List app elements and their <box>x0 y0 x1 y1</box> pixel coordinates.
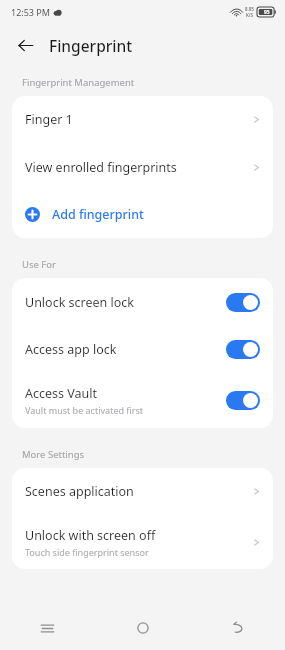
staticText: Vault must be activated first <box>25 404 144 416</box>
staticText: K/S <box>246 12 254 18</box>
button[interactable]: View enrolled fingerprints <box>12 143 273 191</box>
button[interactable]: Recent apps <box>0 606 95 650</box>
button[interactable]: Finger 1 <box>12 96 273 143</box>
button[interactable]: Unlock with screen off <box>12 515 273 569</box>
staticText: Touch side fingerprint sensor <box>25 546 149 558</box>
button[interactable]: Scenes application <box>12 468 273 515</box>
button[interactable]: Back <box>8 28 42 62</box>
button[interactable]: Access Vault <box>12 373 273 428</box>
staticText: Unlock screen lock <box>25 294 135 311</box>
staticText: Unlock with screen off <box>25 527 156 544</box>
staticText: Fingerprint Management <box>22 76 135 89</box>
button[interactable]: Add fingerprint <box>12 191 273 238</box>
staticText: More Settings <box>22 448 85 461</box>
staticText: Add fingerprint <box>52 206 144 223</box>
staticText: Access Vault <box>25 385 97 402</box>
staticText: Scenes application <box>25 483 134 500</box>
staticText: Access app lock <box>25 341 117 358</box>
button[interactable]: Toggle setting <box>226 293 260 312</box>
staticText: Finger 1 <box>25 111 73 128</box>
button[interactable]: Unlock screen lock <box>12 278 273 326</box>
staticText: Use For <box>22 258 56 271</box>
button[interactable]: Access app lock <box>12 326 273 373</box>
button[interactable]: Toggle setting <box>226 340 260 359</box>
staticText: 12:53 PM <box>11 6 50 18</box>
staticText: 95 <box>264 9 270 16</box>
button[interactable]: Toggle setting <box>226 391 260 410</box>
button[interactable]: Home <box>95 606 190 650</box>
staticText: Fingerprint <box>49 35 133 56</box>
button[interactable]: Back <box>190 606 285 650</box>
staticText: View enrolled fingerprints <box>25 159 177 176</box>
staticText: 8.95 <box>245 6 254 12</box>
